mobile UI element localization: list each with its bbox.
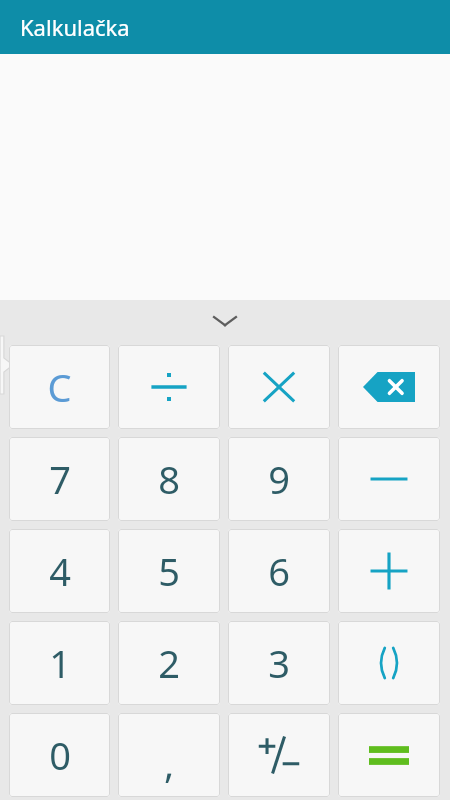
staticText: 6 bbox=[268, 545, 290, 597]
button[interactable] bbox=[118, 345, 220, 429]
button[interactable]: 9 bbox=[228, 437, 330, 521]
button[interactable]: 7 bbox=[9, 437, 110, 521]
button[interactable]: 8 bbox=[118, 437, 220, 521]
staticText: 0 bbox=[49, 729, 71, 781]
button[interactable]: , bbox=[118, 713, 220, 797]
staticText: Kalkulačka bbox=[20, 12, 130, 42]
staticText: C bbox=[47, 361, 72, 413]
staticText: 8 bbox=[158, 453, 180, 505]
staticText: 3 bbox=[268, 637, 290, 689]
button[interactable] bbox=[338, 621, 440, 705]
button[interactable]: 6 bbox=[228, 529, 330, 613]
staticText: 7 bbox=[49, 453, 71, 505]
staticText: 1 bbox=[49, 637, 71, 689]
button[interactable]: 0 bbox=[9, 713, 110, 797]
button[interactable]: 2 bbox=[118, 621, 220, 705]
staticText: 2 bbox=[158, 637, 180, 689]
button[interactable]: C bbox=[9, 345, 110, 429]
staticText: 9 bbox=[268, 453, 290, 505]
button[interactable]: 3 bbox=[228, 621, 330, 705]
button[interactable] bbox=[338, 529, 440, 613]
staticText: 5 bbox=[158, 545, 180, 597]
button[interactable]: Plus minus bbox=[228, 713, 330, 797]
button[interactable]: 5 bbox=[118, 529, 220, 613]
staticText: , bbox=[164, 737, 175, 789]
button[interactable] bbox=[228, 345, 330, 429]
button[interactable] bbox=[338, 437, 440, 521]
button[interactable]: 1 bbox=[9, 621, 110, 705]
button[interactable]: Collapse keypad bbox=[197, 308, 253, 334]
staticText: 4 bbox=[49, 545, 71, 597]
button[interactable]: Equals bbox=[338, 713, 440, 797]
button[interactable]: 4 bbox=[9, 529, 110, 613]
button[interactable]: Backspace bbox=[338, 345, 440, 429]
